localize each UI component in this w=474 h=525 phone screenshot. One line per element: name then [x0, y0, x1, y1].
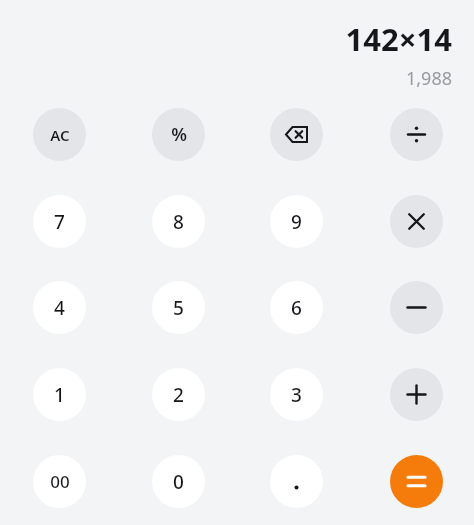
button[interactable]: Divide [390, 108, 443, 161]
button[interactable]: 7 [33, 195, 86, 248]
staticText: 3 [291, 382, 302, 408]
button[interactable]: 4 [33, 281, 86, 334]
staticText: 1 [54, 382, 65, 408]
staticText: 00 [50, 470, 70, 493]
button[interactable]: 00 [33, 455, 86, 508]
staticText: 2 [173, 382, 184, 408]
button[interactable]: Equals [390, 455, 443, 508]
button[interactable]: 6 [270, 281, 323, 334]
staticText: 9 [291, 209, 302, 235]
staticText: 4 [54, 295, 65, 321]
button[interactable]: 3 [270, 368, 323, 421]
button[interactable]: Decimal point [270, 455, 323, 508]
staticText: 7 [54, 209, 65, 235]
button[interactable]: 2 [152, 368, 205, 421]
staticText: % [171, 122, 187, 147]
button[interactable]: Backspace [270, 108, 323, 161]
button[interactable]: 8 [152, 195, 205, 248]
button[interactable]: 0 [152, 455, 205, 508]
button[interactable]: Add [390, 368, 443, 421]
button[interactable]: AC [33, 108, 86, 161]
staticText: 142×14 [345, 18, 452, 60]
button[interactable]: 1 [33, 368, 86, 421]
button[interactable]: 9 [270, 195, 323, 248]
button[interactable]: Multiply [390, 195, 443, 248]
staticText: 6 [291, 295, 302, 321]
staticText: 5 [173, 295, 184, 321]
staticText: 1,988 [405, 66, 452, 91]
button[interactable]: % [152, 108, 205, 161]
staticText: 8 [173, 209, 184, 235]
button[interactable]: Subtract [390, 281, 443, 334]
staticText: 0 [173, 469, 184, 495]
button[interactable]: 5 [152, 281, 205, 334]
staticText: AC [50, 125, 70, 145]
